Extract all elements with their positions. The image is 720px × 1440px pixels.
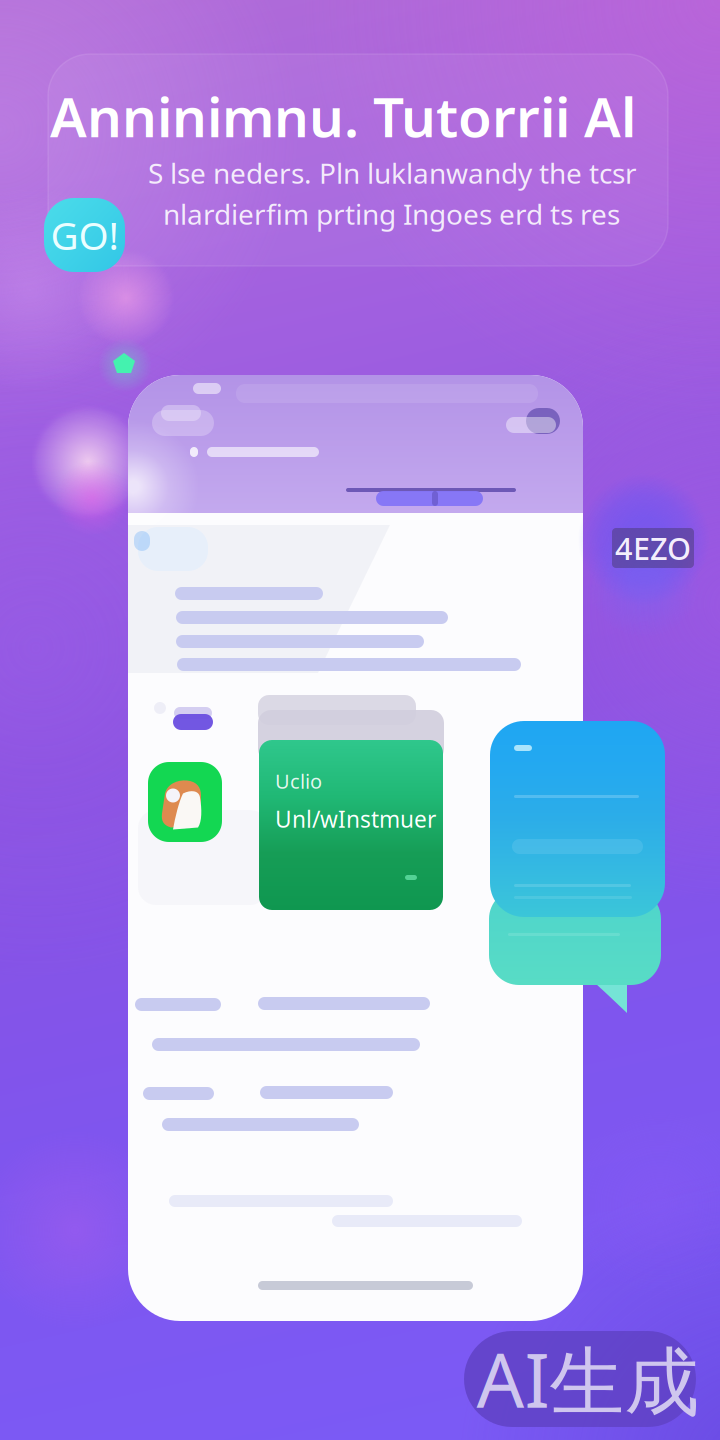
staticText: Uclio xyxy=(275,768,322,794)
button[interactable]: GO! xyxy=(44,198,125,272)
button[interactable]: Uclio xyxy=(258,694,444,914)
staticText: Anninimnu. Tutorrii Al xyxy=(50,80,636,152)
staticText: nlardierfim prting Ingoes erd ts res xyxy=(163,195,620,233)
staticText: AI生成 xyxy=(476,1329,699,1429)
staticText: S lse neders. Pln luklanwandy the tcsr xyxy=(148,154,637,192)
staticText: GO! xyxy=(50,209,118,261)
staticText: 4EZO xyxy=(615,528,691,568)
button[interactable]: Chat bubble card xyxy=(490,721,673,1016)
staticText: Unl/wInstmuer xyxy=(275,804,436,834)
button[interactable]: App icon xyxy=(148,762,222,842)
